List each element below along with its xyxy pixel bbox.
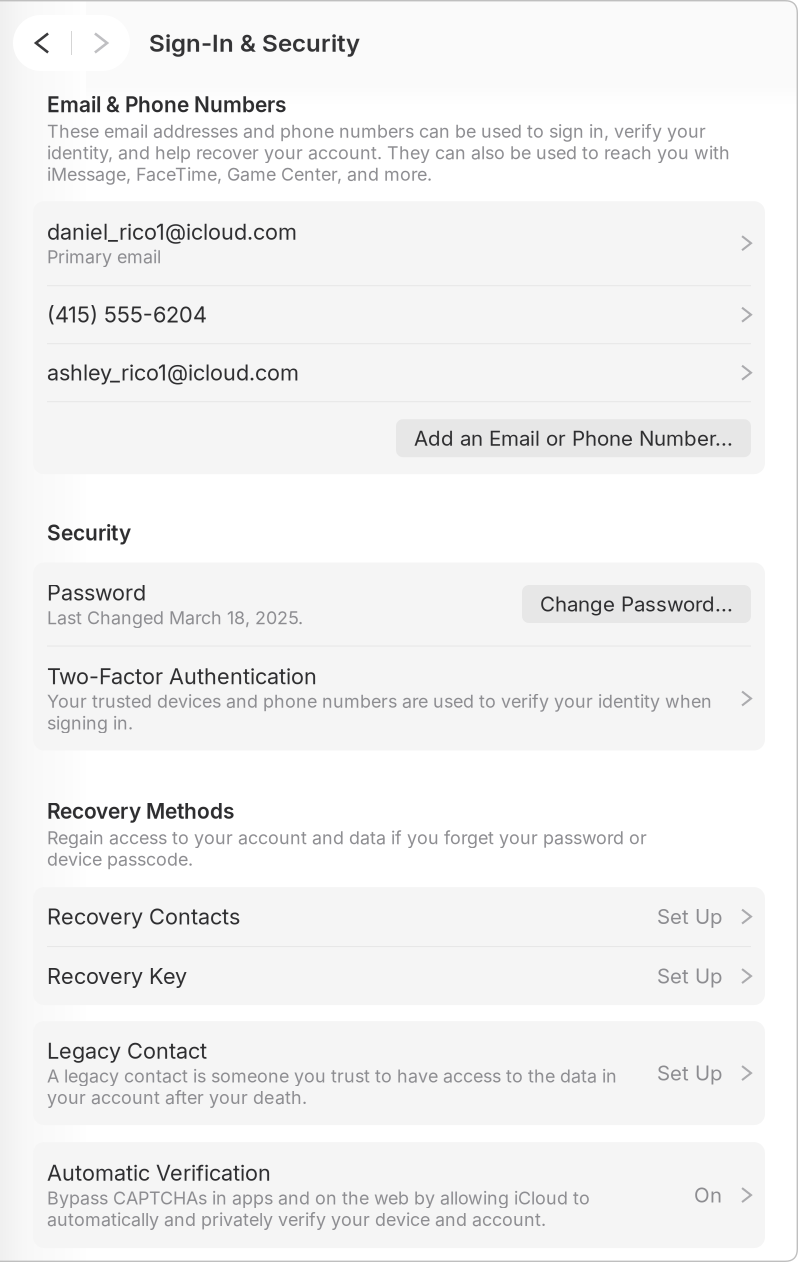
staticText: A legacy contact is someone you trust to… [47, 1065, 617, 1108]
button[interactable]: (415) 555-6204 [33, 286, 765, 343]
staticText: Recovery Key [47, 963, 187, 989]
staticText: On [694, 1183, 722, 1207]
staticText: Recovery Methods [47, 798, 234, 824]
button[interactable]: Recovery Key [33, 947, 765, 1005]
staticText: Regain access to your account and data i… [47, 827, 647, 870]
staticText: Security [47, 520, 131, 545]
button[interactable]: Add an Email or Phone Number... [396, 419, 751, 457]
staticText: daniel_rico1@icloud.com [47, 219, 297, 245]
staticText: Password [47, 580, 146, 606]
staticText: Your trusted devices and phone numbers a… [47, 690, 712, 734]
staticText: Add an Email or Phone Number... [414, 426, 733, 451]
button[interactable]: Legacy Contact [33, 1021, 765, 1125]
staticText: Recovery Contacts [47, 903, 240, 930]
staticText: ashley_rico1@icloud.com [47, 359, 299, 386]
staticText: Last Changed March 18, 2025. [47, 607, 303, 628]
button[interactable]: ashley_rico1@icloud.com [33, 344, 765, 401]
button[interactable]: Automatic Verification [33, 1142, 765, 1248]
staticText: Two-Factor Authentication [47, 663, 317, 689]
button[interactable]: Back [13, 15, 71, 71]
staticText: Set Up [657, 904, 722, 929]
button[interactable]: Recovery Contacts [33, 887, 765, 946]
staticText: Bypass CAPTCHAs in apps and on the web b… [47, 1187, 590, 1230]
button[interactable]: Change Password... [522, 585, 751, 623]
staticText: These email addresses and phone numbers … [47, 120, 730, 185]
button[interactable]: Forward [72, 15, 130, 71]
staticText: Primary email [47, 246, 161, 268]
staticText: Automatic Verification [47, 1160, 271, 1186]
staticText: Sign-In & Security [149, 28, 360, 58]
button[interactable]: Two-Factor Authentication [33, 646, 765, 750]
button[interactable]: daniel_rico1@icloud.com [33, 201, 765, 285]
staticText: Change Password... [540, 592, 733, 616]
staticText: (415) 555-6204 [47, 301, 207, 328]
staticText: Set Up [657, 1061, 722, 1085]
staticText: Set Up [657, 964, 722, 988]
staticText: Email & Phone Numbers [47, 92, 286, 117]
staticText: Legacy Contact [47, 1038, 207, 1064]
